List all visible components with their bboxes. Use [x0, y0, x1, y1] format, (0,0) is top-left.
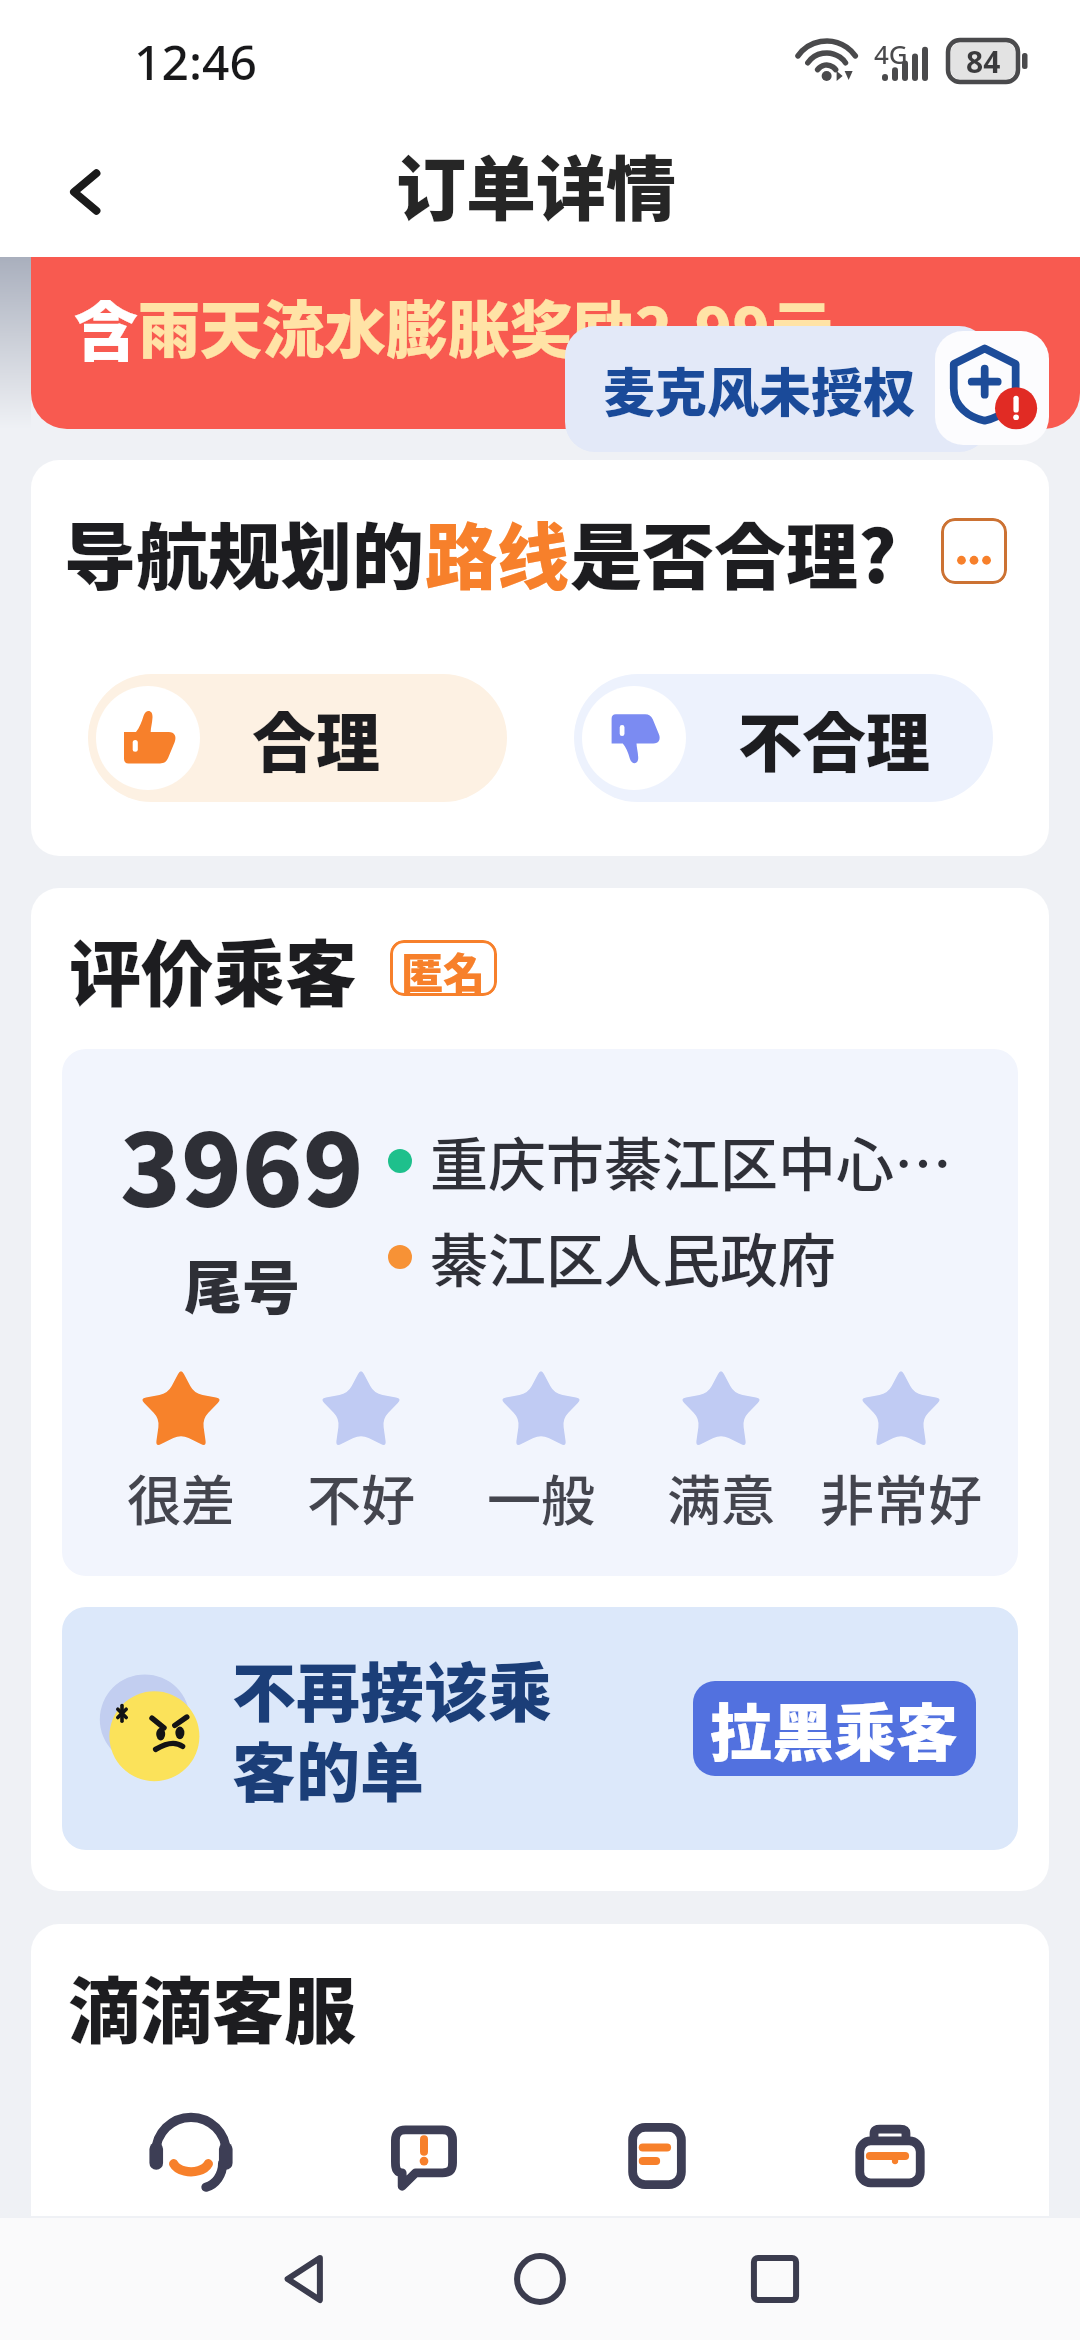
staticText: 滴滴客服	[68, 1953, 357, 2057]
button[interactable]: Microphone permission	[935, 331, 1049, 445]
staticText: 导航规划的	[64, 499, 425, 603]
button[interactable]: 很差	[91, 1364, 271, 1536]
staticText: 一般	[487, 1458, 595, 1536]
button[interactable]: Lost and found	[773, 2101, 1006, 2211]
button[interactable]: Back	[250, 2224, 360, 2334]
staticText: 不合理	[738, 692, 930, 785]
staticText: 拉黑乘客	[710, 1684, 959, 1774]
button[interactable]: Feedback	[540, 2101, 773, 2211]
staticText: 不好	[307, 1458, 415, 1536]
staticText: 尾号	[184, 1242, 301, 1326]
button[interactable]: Home	[485, 2224, 595, 2334]
button[interactable]: 满意	[631, 1364, 811, 1536]
staticText: 2.99	[635, 281, 771, 371]
staticText: 12:46	[134, 29, 257, 94]
staticText: 麦克风未授权	[603, 352, 916, 427]
button[interactable]: 一般	[451, 1364, 631, 1536]
staticText: 路线	[425, 499, 570, 603]
button[interactable]: 拉黑乘客	[693, 1681, 976, 1776]
staticText: 元	[771, 281, 834, 371]
button[interactable]: 不好	[271, 1364, 451, 1536]
staticText: 重庆市綦江区中心…	[430, 1119, 953, 1203]
button[interactable]: Report	[307, 2101, 540, 2211]
button[interactable]: 不再接该乘 客的单	[62, 1607, 1018, 1850]
staticText: 订单详情	[396, 134, 676, 235]
button[interactable]: 含	[31, 257, 1080, 429]
staticText: 合理	[252, 692, 380, 785]
button[interactable]: 不合理	[574, 674, 993, 802]
button[interactable]: 非常好	[811, 1364, 991, 1536]
staticText: 很差	[127, 1458, 235, 1536]
staticText: 3969	[120, 1091, 364, 1236]
staticText: 含	[74, 281, 138, 374]
staticText: 不再接该乘 客的单	[232, 1642, 552, 1815]
button[interactable]: More options	[941, 518, 1007, 584]
button[interactable]: Recent apps	[720, 2224, 830, 2334]
staticText: 匿名	[401, 940, 486, 996]
staticText: 84	[966, 41, 1001, 82]
staticText: 非常好	[820, 1458, 982, 1536]
staticText: 綦江区人民政府	[430, 1215, 837, 1299]
staticText: 评价乘客	[69, 916, 358, 1020]
button[interactable]: 合理	[88, 674, 507, 802]
button[interactable]: Back	[48, 154, 124, 230]
staticText: 是否合理?	[570, 499, 897, 603]
button[interactable]: Customer service	[74, 2101, 307, 2211]
button[interactable]: 麦克风未授权	[565, 326, 989, 452]
staticText: 满意	[667, 1458, 775, 1536]
staticText: 雨天流水膨胀奖励	[138, 281, 635, 371]
staticText: 4G	[874, 36, 908, 71]
